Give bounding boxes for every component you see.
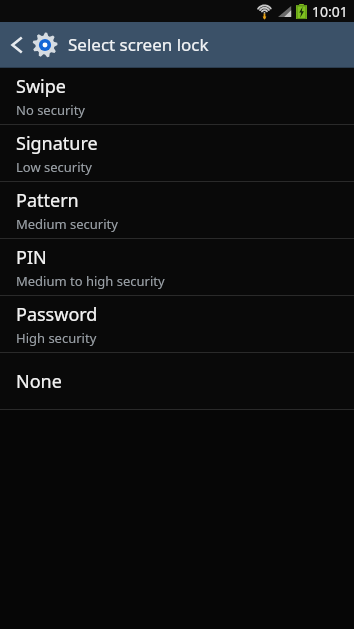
staticText: High security	[16, 329, 97, 347]
button[interactable]: Swipe	[0, 68, 354, 124]
staticText: Password	[16, 302, 98, 327]
staticText: No security	[16, 101, 86, 119]
button[interactable]: Navigate up, Select screen lock	[0, 22, 354, 67]
button[interactable]: Pattern	[0, 182, 354, 238]
staticText: Low security	[16, 158, 92, 176]
staticText: Swipe	[16, 74, 66, 99]
button[interactable]: None	[0, 353, 354, 409]
button[interactable]: Signature	[0, 125, 354, 181]
staticText: Select screen lock	[68, 33, 209, 56]
button[interactable]: Password	[0, 296, 354, 352]
staticText: PIN	[16, 245, 47, 270]
staticText: 10:01	[312, 2, 348, 21]
button[interactable]: PIN	[0, 239, 354, 295]
staticText: Medium to high security	[16, 272, 165, 290]
staticText: None	[16, 369, 62, 394]
staticText: Pattern	[16, 188, 79, 213]
staticText: Signature	[16, 131, 98, 156]
staticText: Medium security	[16, 215, 118, 233]
